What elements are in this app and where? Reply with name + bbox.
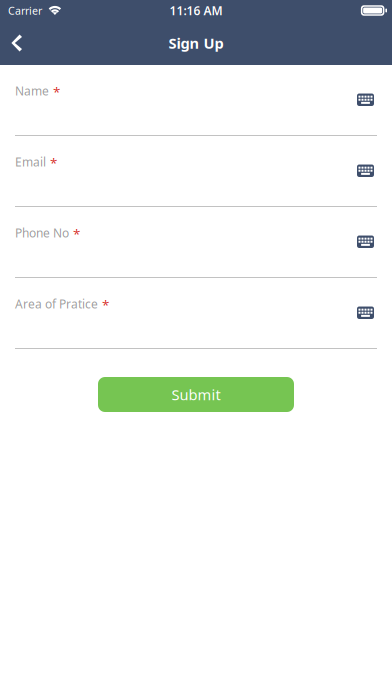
button[interactable]: Email — [0, 151, 392, 222]
staticText: Carrier — [8, 3, 42, 18]
button[interactable]: Show keyboard for Name — [351, 87, 380, 112]
staticText: * — [102, 296, 109, 314]
button[interactable]: Show keyboard for Area of Pratice — [351, 300, 380, 325]
staticText: Area of Pratice — [15, 296, 98, 312]
staticText: Phone No — [15, 225, 69, 241]
button[interactable]: Name — [0, 80, 392, 151]
staticText: * — [73, 225, 80, 243]
staticText: 11:16 AM — [169, 2, 222, 18]
button[interactable]: Show keyboard for Phone No — [351, 229, 380, 254]
staticText: * — [50, 154, 57, 172]
button[interactable]: Submit — [98, 377, 294, 412]
staticText: Sign Up — [168, 33, 223, 53]
button[interactable]: Phone No — [0, 222, 392, 293]
button[interactable]: Back — [0, 21, 36, 65]
button[interactable]: Area of Pratice — [0, 293, 392, 364]
staticText: Name — [15, 83, 49, 99]
button[interactable]: Show keyboard for Email — [351, 158, 380, 183]
staticText: Email — [15, 154, 46, 170]
staticText: Submit — [171, 385, 220, 404]
staticText: * — [53, 83, 60, 101]
